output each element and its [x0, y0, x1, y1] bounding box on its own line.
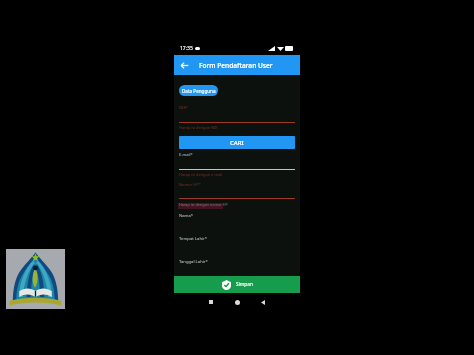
staticText: CARI — [230, 139, 244, 147]
button[interactable]: Recent apps — [198, 293, 224, 311]
staticText: Nomor HP* — [179, 182, 201, 187]
staticText: Harap isi dengan NIK — [179, 125, 218, 130]
button[interactable]: Back — [174, 55, 300, 75]
staticText: Tempat Lahir* — [179, 236, 208, 242]
button[interactable]: Back — [174, 55, 194, 75]
button[interactable]: Back — [250, 293, 276, 311]
button[interactable] — [179, 180, 295, 203]
staticText: E-mail* — [179, 152, 193, 157]
button[interactable]: Logo Tut Wuri Handayani — [6, 249, 65, 309]
button[interactable]: Simpan — [174, 276, 300, 293]
staticText: Simpan — [236, 281, 253, 288]
staticText: Form Pendaftaran User — [199, 61, 273, 70]
button[interactable] — [179, 150, 295, 174]
staticText: Tanggal Lahir* — [179, 259, 208, 265]
staticText: NIK* — [179, 105, 189, 110]
staticText: Harap isi dengan e-mail — [179, 172, 223, 177]
staticText: Nama* — [179, 213, 194, 219]
staticText: Harap isi dengan nomor HP — [179, 202, 228, 207]
button[interactable]: Home — [224, 293, 250, 311]
staticText: 17:35 — [180, 45, 193, 52]
button[interactable]: Data Pengguna — [179, 85, 218, 96]
staticText: Data Pengguna — [182, 88, 216, 94]
button[interactable] — [179, 234, 295, 257]
button[interactable]: CARI — [179, 136, 295, 149]
button[interactable] — [179, 211, 295, 234]
button[interactable] — [179, 257, 295, 276]
button[interactable] — [179, 103, 295, 127]
